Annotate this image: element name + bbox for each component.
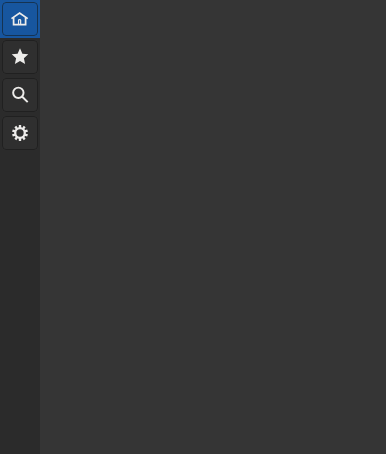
button[interactable]: Search — [0, 76, 40, 114]
button[interactable]: Settings — [0, 114, 40, 152]
button[interactable]: Favorites — [0, 38, 40, 76]
button[interactable]: Home — [0, 0, 40, 38]
